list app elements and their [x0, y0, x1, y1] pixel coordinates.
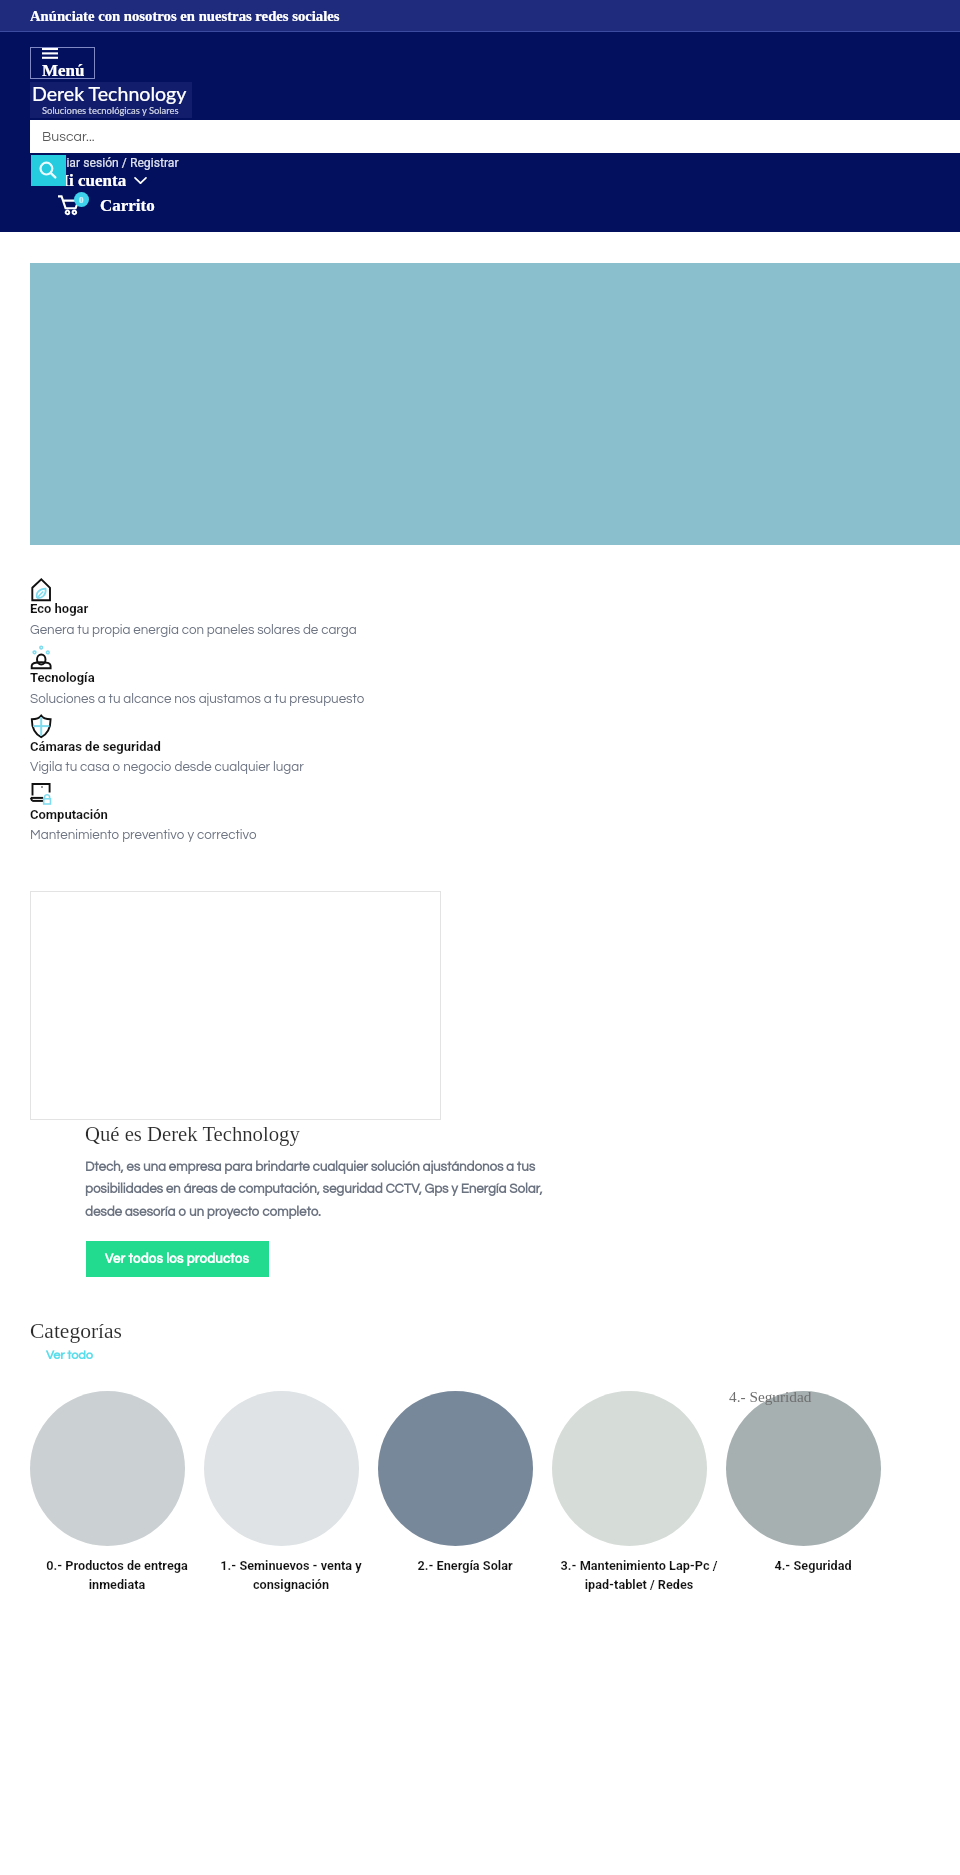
- staticText: Mi cuenta: [53, 171, 127, 190]
- button[interactable]: Iniciar sesión / Registrar: [47, 156, 179, 170]
- staticText: 4.- Seguridad: [726, 1558, 900, 1573]
- staticText: Genera tu propia energía con paneles sol…: [30, 623, 357, 637]
- button[interactable]: Computación: [29, 781, 53, 806]
- button[interactable]: Eco hogar: [29, 576, 53, 601]
- staticText: Anúnciate con nosotros en nuestras redes…: [30, 8, 340, 24]
- staticText: 0.- Productos de entrega inmediata: [30, 1558, 204, 1592]
- staticText: Dtech, es una empresa para brindarte cua…: [85, 1160, 543, 1219]
- button[interactable]: Tecnología: [29, 644, 53, 669]
- staticText: Categorías: [30, 1319, 122, 1343]
- button[interactable]: Cámaras de seguridad: [29, 713, 53, 738]
- button[interactable]: 0.- Productos de entrega inmediata: [30, 1391, 204, 1592]
- button[interactable]: 4.- Seguridad: [726, 1391, 900, 1573]
- button[interactable]: Anúnciate con nosotros en nuestras redes…: [0, 0, 960, 31]
- button[interactable]: Menú: [30, 47, 95, 79]
- button[interactable]: Ver todos los productos: [86, 1241, 269, 1277]
- button[interactable]: 0: [56, 192, 156, 218]
- staticText: Derek Technology: [32, 82, 187, 106]
- button[interactable]: Ver todo: [46, 1349, 93, 1362]
- staticText: 1.- Seminuevos - venta y consignación: [204, 1558, 378, 1592]
- button[interactable]: Cámaras de seguridad: [30, 739, 161, 754]
- staticText: 2.- Energía Solar: [378, 1558, 552, 1573]
- staticText: Carrito: [100, 196, 155, 215]
- staticText: Mantenimiento preventivo y correctivo: [30, 828, 257, 842]
- button[interactable]: 3.- Mantenimiento Lap-Pc / ipad-tablet /…: [552, 1391, 726, 1592]
- staticText: Vigila tu casa o negocio desde cualquier…: [30, 760, 304, 774]
- staticText: 4.- Seguridad: [729, 1388, 812, 1405]
- staticText: Soluciones tecnológicas y Solares: [42, 105, 179, 116]
- staticText: Menú: [42, 61, 85, 80]
- staticText: Soluciones a tu alcance nos ajustamos a …: [30, 692, 365, 706]
- staticText: Ver todos los productos: [105, 1253, 250, 1266]
- staticText: 3.- Mantenimiento Lap-Pc / ipad-tablet /…: [552, 1558, 726, 1592]
- staticText: Qué es Derek Technology: [85, 1123, 300, 1146]
- button[interactable]: Computación: [30, 807, 108, 822]
- button[interactable]: Eco hogar: [30, 601, 89, 616]
- button[interactable]: 1.- Seminuevos - venta y consignación: [204, 1391, 378, 1592]
- staticText: 0: [79, 195, 84, 205]
- button[interactable]: Buscar: [31, 155, 66, 186]
- button[interactable]: Tecnología: [30, 670, 95, 685]
- button[interactable]: Mi cuenta: [53, 171, 146, 190]
- button[interactable]: Buscar...: [30, 120, 960, 153]
- button[interactable]: 2.- Energía Solar: [378, 1391, 552, 1573]
- button[interactable]: Derek Technology: [30, 82, 192, 118]
- staticText: Buscar...: [42, 130, 95, 144]
